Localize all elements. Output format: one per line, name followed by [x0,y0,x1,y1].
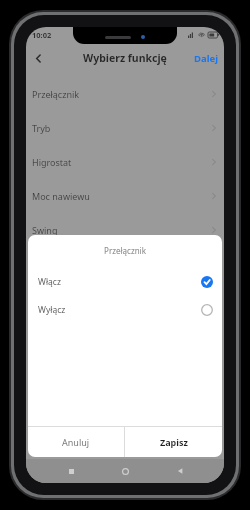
button[interactable]: Swing [26,213,224,247]
staticText: Włącz [38,276,201,288]
staticText: Moc nawiewu [32,190,210,202]
button[interactable]: Przełącznik [26,77,224,111]
button[interactable]: Moc nawiewu [26,179,224,213]
staticText: Przełącznik [32,88,210,100]
button[interactable]: Wstecz [170,461,190,481]
button[interactable]: Higrostat [26,145,224,179]
button[interactable]: Anuluj [28,427,124,457]
staticText: Anuluj [62,436,90,448]
button[interactable]: Włącz [28,268,222,296]
button[interactable]: Zapisz [125,427,222,457]
staticText: Przełącznik [28,245,222,256]
staticText: Higrostat [32,156,210,168]
button[interactable]: Dalej [188,48,224,69]
staticText: Wybierz funkcję [83,51,167,65]
button[interactable]: Wstecz [26,46,50,70]
staticText: Swing [32,224,210,236]
staticText: Dalej [194,52,218,65]
staticText: Wyłącz [38,304,201,316]
button[interactable]: Wyłącz [28,296,222,324]
staticText: Tryb [32,122,210,134]
staticText: Zapisz [160,436,188,448]
button[interactable]: Ekran główny [115,461,135,481]
staticText: 10:02 [32,30,52,40]
button[interactable]: Tryb [26,111,224,145]
button[interactable]: Ostatnie [61,461,81,481]
